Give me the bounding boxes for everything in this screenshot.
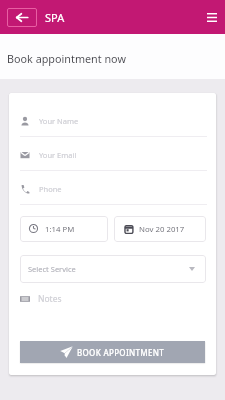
staticText: Nov 20 2017: [139, 224, 185, 235]
staticText: Book appointment now: [7, 51, 126, 66]
button[interactable]: Select Service: [20, 255, 206, 283]
button[interactable]: Phone: [9, 171, 216, 205]
button[interactable]: Menu: [205, 10, 219, 24]
button[interactable]: Your Email: [9, 137, 216, 171]
button[interactable]: Nov 20 2017: [114, 216, 206, 242]
button[interactable]: Notes: [20, 291, 216, 307]
button[interactable]: Back: [7, 8, 37, 27]
staticText: Your Name: [39, 116, 79, 126]
staticText: 1:14 PM: [45, 224, 75, 235]
button[interactable]: BOOK APPOINTMENT: [20, 341, 205, 363]
button[interactable]: Your Name: [9, 93, 216, 137]
staticText: Your Email: [39, 150, 77, 160]
staticText: BOOK APPOINTMENT: [77, 347, 165, 358]
staticText: SPA: [45, 10, 65, 25]
staticText: Notes: [38, 293, 62, 305]
button[interactable]: 1:14 PM: [20, 216, 108, 242]
staticText: Phone: [39, 184, 62, 194]
staticText: Select Service: [28, 264, 76, 274]
